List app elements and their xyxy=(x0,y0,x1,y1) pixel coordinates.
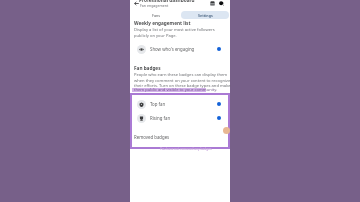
staticText: them public and visible to your communit… xyxy=(134,87,218,93)
staticText: Top fan xyxy=(150,101,166,107)
staticText: Fan badges xyxy=(134,65,161,71)
button[interactable]: Back xyxy=(133,0,140,7)
button[interactable]: Insights xyxy=(209,0,216,7)
staticText: People who earn these badges can display… xyxy=(134,72,231,88)
button[interactable]: Fans xyxy=(132,11,179,19)
staticText: Settings xyxy=(198,13,213,18)
button[interactable]: Show who's engaging xyxy=(137,44,221,54)
staticText: Rising fan xyxy=(150,115,171,121)
button[interactable]: Top fan xyxy=(137,99,221,109)
button[interactable]: Removed badges xyxy=(134,134,170,140)
button[interactable]: Profile xyxy=(218,0,225,7)
staticText: Fan engagement xyxy=(140,3,169,8)
staticText: Show who's engaging xyxy=(150,46,195,52)
button[interactable]: Rising fan xyxy=(137,113,221,123)
staticText: Fans xyxy=(152,13,160,18)
button[interactable]: Settings xyxy=(181,11,229,19)
staticText: You have not removed any badges xyxy=(160,147,212,151)
staticText: Professional dashboard xyxy=(139,0,195,3)
staticText: Display a list of your most active follo… xyxy=(134,27,215,38)
staticText: Weekly engagement list xyxy=(134,20,191,26)
